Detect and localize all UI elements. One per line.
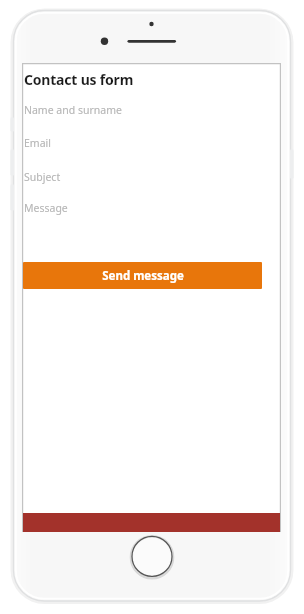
staticText: Name and surname bbox=[24, 103, 122, 117]
button[interactable]: Email bbox=[23, 136, 262, 170]
staticText: Email bbox=[24, 136, 51, 150]
button[interactable]: Message bbox=[23, 201, 262, 262]
staticText: Contact us form bbox=[24, 70, 134, 89]
staticText: Send message bbox=[102, 268, 184, 284]
button[interactable]: Subject bbox=[23, 170, 262, 201]
staticText: Message bbox=[24, 201, 68, 215]
staticText: Subject bbox=[24, 170, 61, 184]
button[interactable]: Send message bbox=[23, 262, 262, 289]
button[interactable]: Name and surname bbox=[23, 103, 262, 136]
